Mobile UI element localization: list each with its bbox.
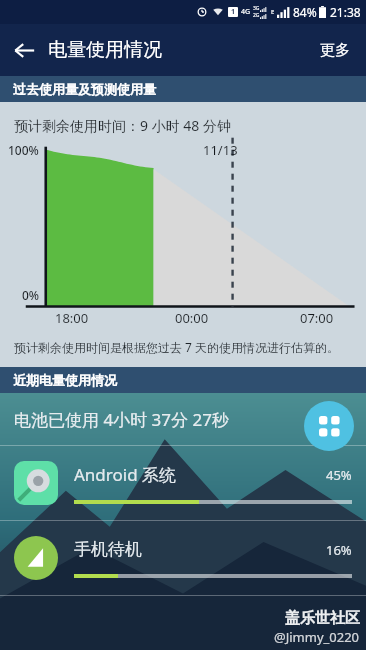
staticText: 盖乐世社区 bbox=[285, 609, 360, 628]
staticText: 3G bbox=[253, 5, 260, 12]
staticText: 18:00 bbox=[55, 309, 89, 327]
button[interactable]: 返回 bbox=[0, 26, 48, 74]
staticText: 16% bbox=[326, 541, 352, 559]
staticText: 过去使用量及预测使用量 bbox=[13, 81, 156, 97]
staticText: 11/13 bbox=[203, 141, 238, 159]
staticText: 84% bbox=[293, 4, 317, 20]
button[interactable]: 手机待机 bbox=[0, 521, 366, 595]
staticText: 07:00 bbox=[300, 309, 334, 327]
staticText: 21:38 bbox=[330, 4, 361, 20]
staticText: 近期电量使用情况 bbox=[13, 372, 117, 388]
staticText: 45% bbox=[326, 466, 352, 484]
staticText: 预计剩余使用时间：9 小时 48 分钟 bbox=[14, 116, 231, 135]
staticText: 1 bbox=[231, 7, 236, 17]
button[interactable]: 应用列表 bbox=[304, 401, 354, 451]
staticText: 更多 bbox=[320, 41, 350, 60]
staticText: 00:00 bbox=[175, 309, 209, 327]
staticText: @Jimmy_0220 bbox=[274, 628, 360, 646]
staticText: 100% bbox=[8, 142, 39, 158]
staticText: 4G bbox=[241, 7, 251, 17]
staticText: 预计剩余使用时间是根据您过去 7 天的使用情况进行估算的。 bbox=[14, 339, 340, 355]
button[interactable]: Android 系统 bbox=[0, 446, 366, 520]
staticText: 手机待机 bbox=[74, 539, 142, 560]
staticText: E bbox=[271, 8, 275, 16]
staticText: 2G bbox=[253, 12, 260, 19]
staticText: Android 系统 bbox=[74, 463, 177, 486]
staticText: 0% bbox=[22, 287, 40, 303]
staticText: 电池已使用 4小时 37分 27秒 bbox=[14, 408, 229, 431]
staticText: 电量使用情况 bbox=[48, 38, 162, 62]
button[interactable]: 更多 bbox=[304, 27, 366, 74]
